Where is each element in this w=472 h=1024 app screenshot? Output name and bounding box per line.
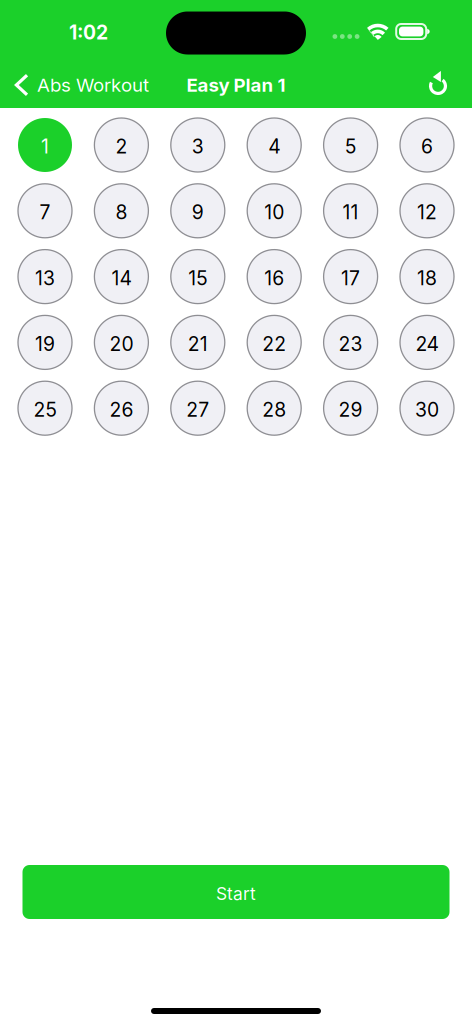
staticText: 19 (35, 332, 55, 356)
button[interactable]: Start (22, 865, 449, 919)
staticText: 6 (421, 135, 433, 158)
staticText: 1 (41, 135, 49, 158)
button[interactable]: 15 (171, 250, 225, 304)
staticText: 24 (415, 332, 438, 356)
staticText: 22 (262, 332, 286, 356)
button[interactable]: 21 (171, 315, 225, 369)
staticText: 27 (186, 398, 209, 421)
button[interactable]: 24 (400, 315, 454, 369)
button[interactable]: 13 (18, 250, 72, 304)
staticText: 9 (192, 201, 204, 224)
button[interactable]: 19 (18, 315, 72, 369)
staticText: 23 (339, 332, 363, 356)
staticText: 10 (264, 201, 284, 224)
staticText: 8 (115, 201, 127, 224)
button[interactable]: 16 (247, 250, 301, 304)
button[interactable]: 27 (171, 381, 225, 435)
button[interactable]: Abs Workout (0, 62, 159, 108)
staticText: 25 (33, 398, 56, 421)
button[interactable]: 7 (18, 184, 72, 238)
button[interactable]: 29 (324, 381, 378, 435)
button[interactable]: 1 (18, 118, 72, 172)
button[interactable]: 14 (94, 250, 148, 304)
button[interactable]: 28 (247, 381, 301, 435)
staticText: 17 (341, 266, 360, 290)
button[interactable]: 11 (324, 184, 378, 238)
button[interactable]: 26 (94, 381, 148, 435)
staticText: 26 (109, 398, 133, 421)
button[interactable]: 30 (400, 381, 454, 435)
button[interactable]: 10 (247, 184, 301, 238)
staticText: 16 (264, 266, 284, 290)
staticText: 12 (417, 201, 437, 224)
button[interactable]: 22 (247, 315, 301, 369)
staticText: Start (216, 883, 256, 904)
button[interactable]: 3 (171, 118, 225, 172)
button[interactable]: 25 (18, 381, 72, 435)
staticText: 28 (262, 398, 286, 421)
staticText: 14 (111, 266, 131, 290)
button[interactable]: 2 (94, 118, 148, 172)
button[interactable]: 9 (171, 184, 225, 238)
staticText: 4 (268, 135, 280, 158)
staticText: 2 (115, 135, 127, 158)
button[interactable]: 23 (324, 315, 378, 369)
button[interactable]: 5 (324, 118, 378, 172)
button[interactable]: 18 (400, 250, 454, 304)
staticText: 21 (188, 332, 208, 356)
staticText: 30 (415, 398, 439, 421)
staticText: 5 (345, 135, 356, 158)
staticText: 29 (339, 398, 363, 421)
staticText: 7 (39, 201, 50, 224)
staticText: 15 (188, 266, 207, 290)
staticText: 20 (109, 332, 133, 356)
staticText: Easy Plan 1 (186, 74, 285, 96)
staticText: 1:02 (69, 21, 108, 44)
button[interactable]: 20 (94, 315, 148, 369)
staticText: 3 (192, 135, 204, 158)
button[interactable]: 8 (94, 184, 148, 238)
button[interactable]: 12 (400, 184, 454, 238)
button[interactable]: Restart plan (412, 62, 464, 108)
button[interactable]: 6 (400, 118, 454, 172)
staticText: Abs Workout (37, 74, 149, 96)
button[interactable]: 4 (247, 118, 301, 172)
staticText: 18 (417, 266, 437, 290)
staticText: 13 (35, 266, 55, 290)
staticText: 11 (343, 201, 359, 224)
button[interactable]: 17 (324, 250, 378, 304)
